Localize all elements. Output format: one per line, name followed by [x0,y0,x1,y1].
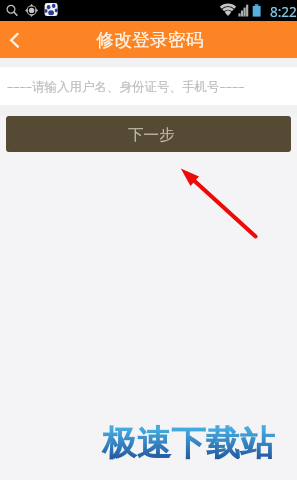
button[interactable]: ––––请输入用户名、身份证号、手机号–––– [0,67,297,105]
staticText: 下一步 [128,125,175,145]
staticText: 极速下载站 [102,422,275,465]
staticText: 8:22 [270,3,297,21]
button[interactable]: 下一步 [6,116,291,152]
staticText: 修改登录密码 [96,29,204,52]
staticText: ––––请输入用户名、身份证号、手机号–––– [7,78,245,95]
button[interactable]: Back [0,21,36,58]
